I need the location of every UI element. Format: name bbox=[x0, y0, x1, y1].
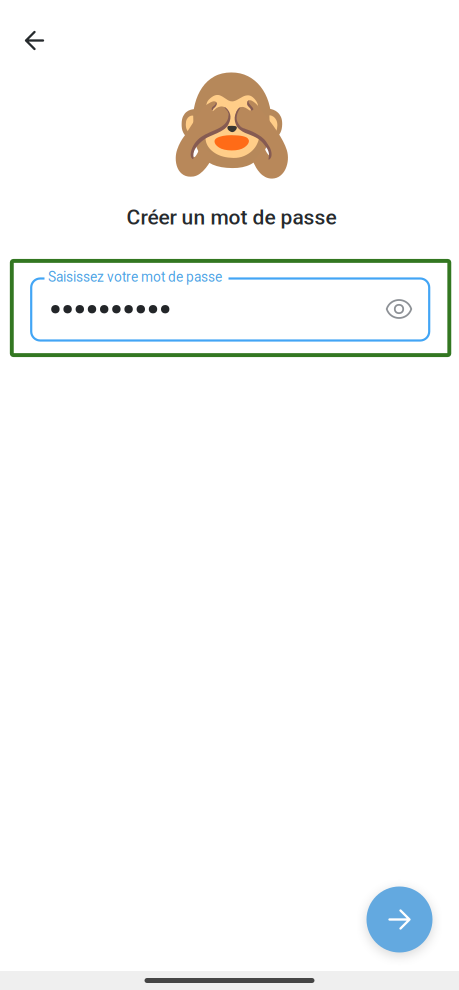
button[interactable]: Retour bbox=[11, 17, 57, 63]
button[interactable]: Continuer bbox=[366, 886, 432, 952]
staticText: 🙈 bbox=[168, 65, 294, 181]
staticText: Créer un mot de passe bbox=[126, 205, 336, 230]
staticText: Saisissez votre mot de passe bbox=[48, 269, 222, 285]
button[interactable]: Afficher le mot de passe bbox=[376, 286, 422, 332]
